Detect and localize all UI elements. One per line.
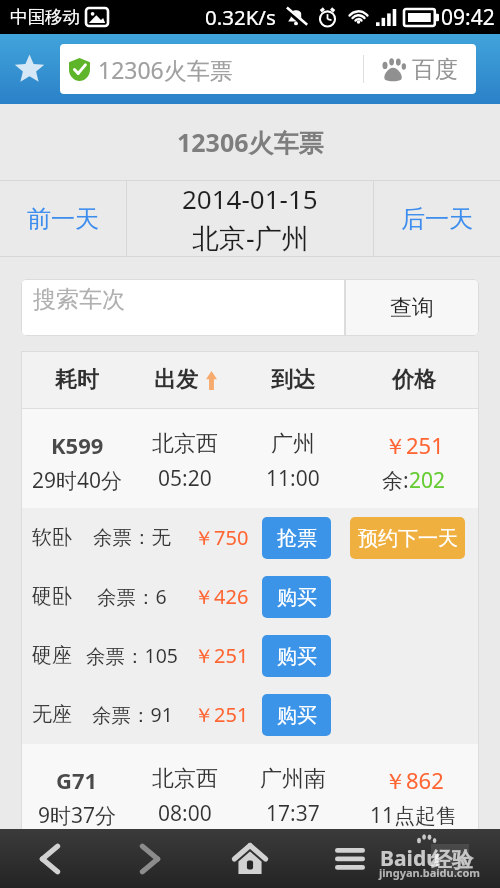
button[interactable]: Forward bbox=[100, 829, 200, 888]
staticText: 05:20 bbox=[158, 464, 212, 493]
staticText: 余票：6 bbox=[97, 583, 167, 610]
staticText: ￥251 bbox=[384, 430, 444, 460]
staticText: 后一天 bbox=[401, 204, 473, 234]
staticText: K599 bbox=[51, 430, 104, 460]
staticText: 余票：91 bbox=[92, 701, 173, 728]
staticText: 11:00 bbox=[266, 464, 320, 493]
button[interactable]: 到达 bbox=[237, 351, 349, 409]
button[interactable]: 12306火车票 bbox=[60, 44, 363, 94]
staticText: 搜索车次 bbox=[33, 285, 125, 314]
staticText: 软卧 bbox=[32, 525, 72, 550]
staticText: 广州南 bbox=[260, 765, 326, 793]
staticText: 17:37 bbox=[266, 799, 320, 828]
staticText: 耗时 bbox=[55, 366, 99, 394]
staticText: G71 bbox=[56, 765, 98, 795]
staticText: 无座 bbox=[32, 702, 72, 727]
button[interactable]: Bookmark bbox=[0, 34, 58, 104]
button[interactable]: 购买 bbox=[262, 694, 331, 736]
staticText: 08:00 bbox=[158, 799, 212, 828]
button[interactable]: Menu bbox=[300, 829, 400, 888]
button[interactable]: 出发 bbox=[133, 351, 237, 409]
staticText: 北京-广州 bbox=[192, 219, 309, 256]
button[interactable]: 查询 bbox=[345, 279, 479, 336]
staticText: ￥251 bbox=[194, 701, 249, 728]
staticText: 百度 bbox=[412, 55, 458, 84]
staticText: 查询 bbox=[390, 294, 434, 322]
staticText: ￥426 bbox=[194, 583, 249, 610]
staticText: 硬卧 bbox=[32, 584, 72, 609]
staticText: 经验 bbox=[431, 847, 469, 873]
button[interactable]: 百度 bbox=[364, 44, 476, 94]
button[interactable]: 购买 bbox=[262, 576, 331, 618]
staticText: ￥251 bbox=[194, 642, 249, 669]
staticText: 购买 bbox=[277, 585, 317, 610]
staticText: 前一天 bbox=[27, 204, 99, 234]
button[interactable]: 搜索车次 bbox=[21, 279, 345, 336]
staticText: 到达 bbox=[271, 366, 315, 394]
staticText: 11点起售 bbox=[370, 801, 458, 830]
staticText: 余票：无 bbox=[93, 525, 171, 550]
button[interactable]: K599 bbox=[21, 409, 479, 508]
staticText: 09:42 bbox=[441, 3, 495, 32]
staticText: 预约下一天 bbox=[358, 526, 458, 551]
staticText: 9时37分 bbox=[38, 801, 117, 830]
staticText: 硬座 bbox=[32, 643, 72, 668]
staticText: 12306火车票 bbox=[177, 125, 324, 159]
staticText: 出发 bbox=[154, 366, 198, 394]
staticText: Bai bbox=[380, 844, 413, 873]
staticText: 余: bbox=[382, 466, 409, 495]
staticText: ￥750 bbox=[194, 524, 249, 551]
staticText: 抢票 bbox=[277, 526, 317, 551]
staticText: ￥862 bbox=[384, 765, 444, 795]
staticText: 广州 bbox=[271, 430, 315, 458]
staticText: 余票：105 bbox=[86, 642, 178, 669]
staticText: du bbox=[413, 844, 440, 873]
button[interactable]: Home bbox=[200, 829, 300, 888]
staticText: 29时40分 bbox=[32, 466, 123, 495]
button[interactable]: 价格 bbox=[349, 351, 479, 409]
staticText: 价格 bbox=[392, 366, 436, 394]
button[interactable]: 预约下一天 bbox=[350, 517, 465, 559]
staticText: 中国移动 bbox=[10, 6, 80, 28]
button[interactable]: 前一天 bbox=[0, 180, 126, 257]
staticText: 购买 bbox=[277, 703, 317, 728]
staticText: 购买 bbox=[277, 644, 317, 669]
staticText: 202 bbox=[409, 466, 446, 495]
button[interactable]: Back bbox=[0, 829, 100, 888]
button[interactable]: 耗时 bbox=[21, 351, 133, 409]
button[interactable]: 购买 bbox=[262, 635, 331, 677]
staticText: 北京西 bbox=[152, 430, 218, 458]
staticText: 0.32K/s bbox=[205, 3, 276, 31]
button[interactable]: 抢票 bbox=[262, 517, 331, 559]
button[interactable]: 后一天 bbox=[374, 180, 500, 257]
button[interactable]: G71 bbox=[21, 744, 479, 854]
staticText: 2014-01-15 bbox=[182, 181, 318, 216]
staticText: 12306火车票 bbox=[98, 54, 233, 85]
staticText: 北京西 bbox=[152, 765, 218, 793]
staticText: jingyan.baidu.com bbox=[379, 865, 481, 880]
